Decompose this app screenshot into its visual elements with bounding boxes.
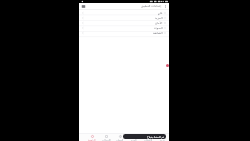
button[interactable]: More options bbox=[163, 4, 167, 8]
button[interactable]: تم الحفظ بنجاح bbox=[123, 134, 166, 139]
staticText: خروج bbox=[160, 139, 165, 141]
staticText: الأمان bbox=[155, 21, 163, 24]
staticText: الرئيسية bbox=[88, 139, 96, 141]
button[interactable]: الحساب bbox=[113, 134, 127, 141]
button[interactable]: الأمان bbox=[79, 20, 169, 25]
button[interactable]: الشاشة bbox=[79, 30, 169, 35]
staticText: المزيد bbox=[155, 16, 163, 19]
button[interactable]: المزيد bbox=[127, 134, 141, 141]
staticText: الصوت bbox=[154, 26, 163, 29]
staticText: الشاشة bbox=[153, 31, 163, 34]
staticText: الإشعارات bbox=[102, 139, 111, 141]
button[interactable]: Add bbox=[166, 64, 169, 67]
button[interactable]: الإعدادات bbox=[141, 134, 155, 141]
staticText: المزيد bbox=[131, 139, 137, 141]
button[interactable]: الإشعارات bbox=[99, 134, 113, 141]
staticText: الإعدادات bbox=[144, 139, 153, 141]
button[interactable]: عام bbox=[79, 10, 169, 15]
staticText: إعدادات التطبيق bbox=[141, 4, 162, 8]
staticText: تم الحفظ بنجاح bbox=[147, 135, 164, 139]
staticText: الحساب bbox=[116, 139, 124, 141]
button[interactable]: الرئيسية bbox=[85, 134, 99, 141]
button[interactable]: الصوت bbox=[79, 25, 169, 30]
staticText: عام bbox=[158, 11, 163, 14]
button[interactable]: المزيد bbox=[79, 15, 169, 20]
button[interactable]: خروج bbox=[155, 134, 169, 141]
button[interactable]: Back bbox=[81, 4, 86, 9]
